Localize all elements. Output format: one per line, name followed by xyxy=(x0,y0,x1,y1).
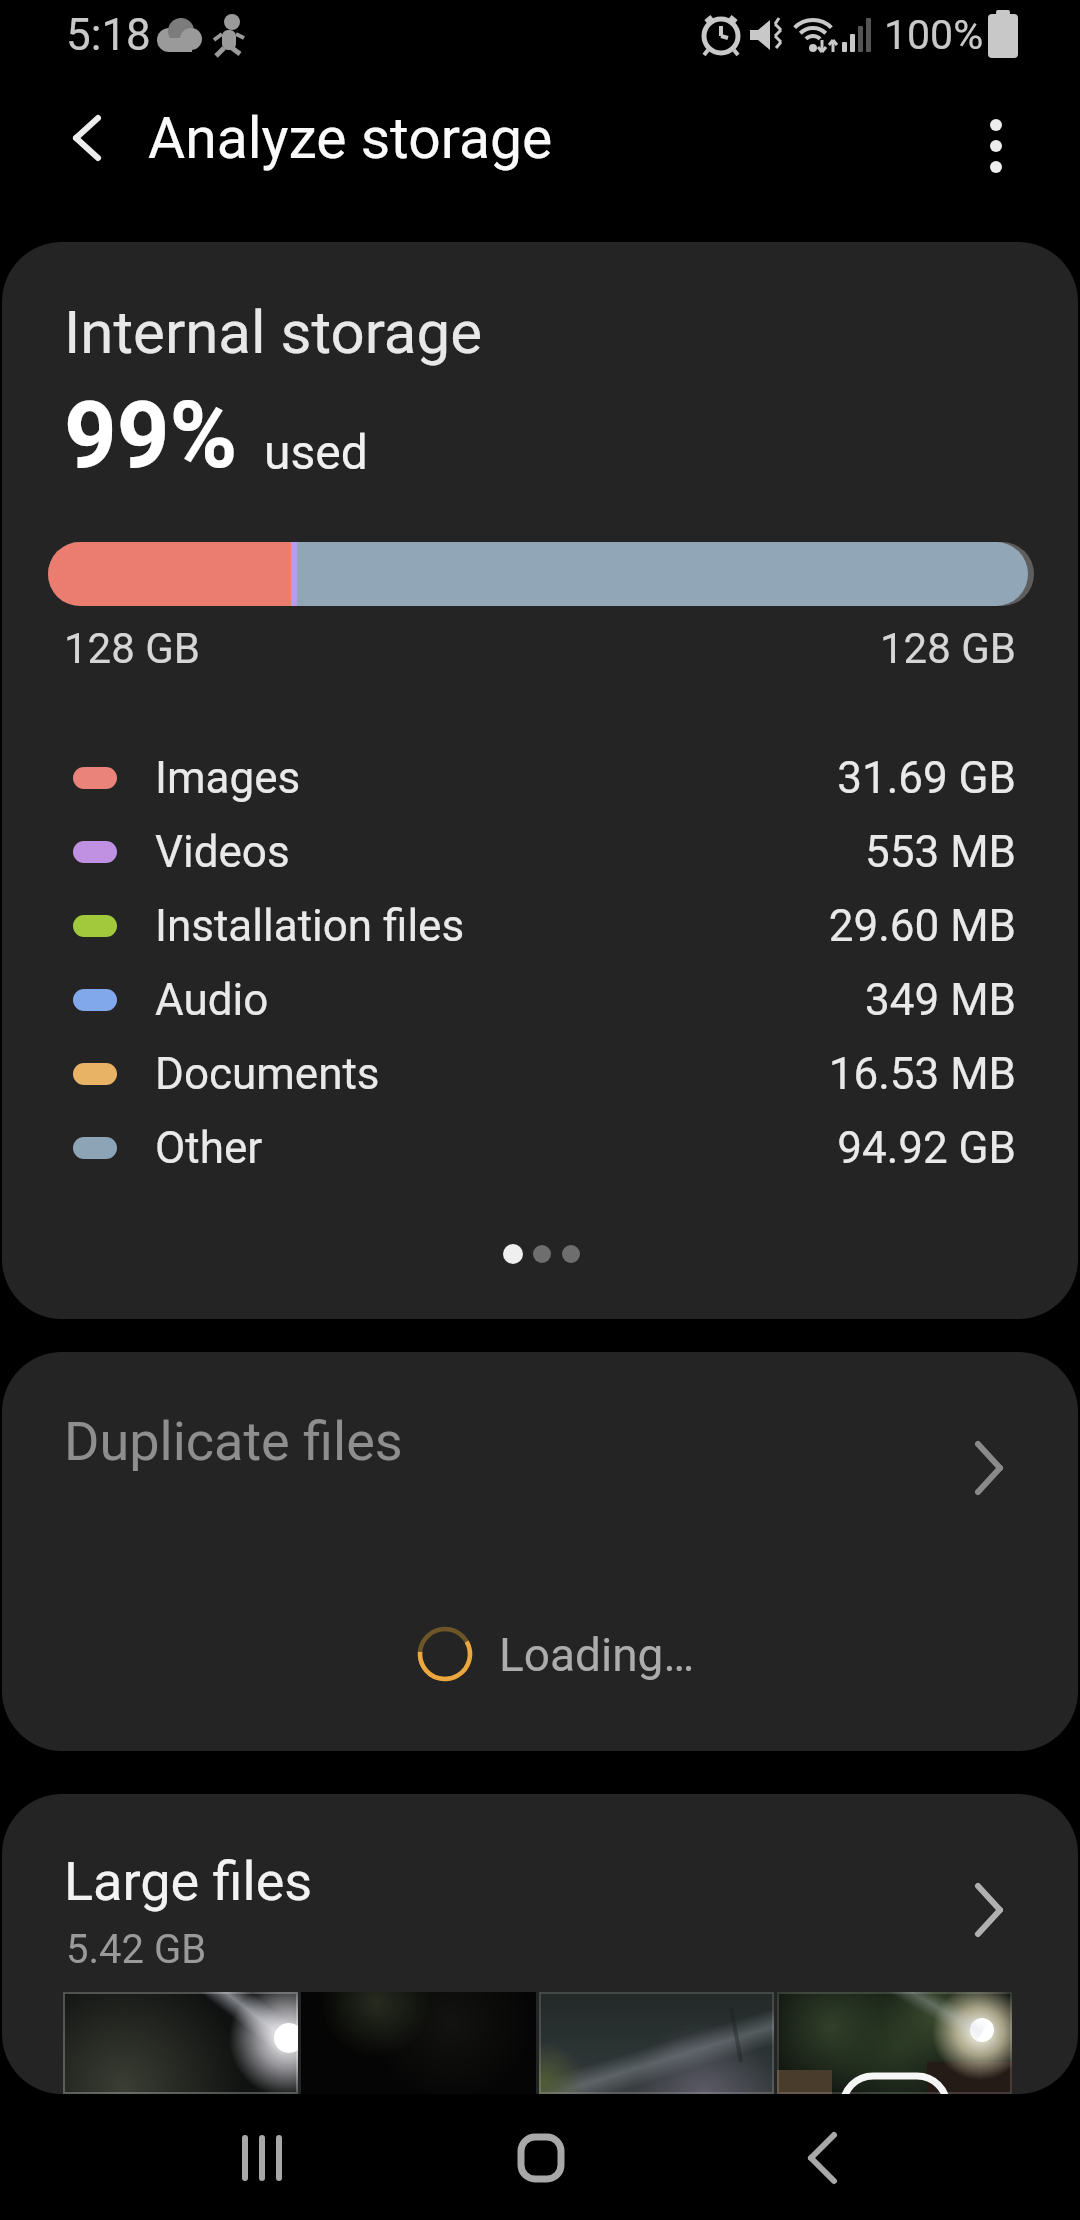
staticText: 349 MB xyxy=(2,974,1016,1026)
staticText: Audio xyxy=(155,974,269,1026)
button[interactable] xyxy=(50,100,126,176)
staticText: Installation files xyxy=(155,900,465,952)
button[interactable]: Videos xyxy=(2,815,1078,889)
staticText: 5:18 xyxy=(66,9,151,61)
button[interactable]: Installation files xyxy=(2,889,1078,963)
staticText: 16.53 MB xyxy=(2,1048,1016,1100)
staticText: Videos xyxy=(155,826,290,878)
staticText: 29.60 MB xyxy=(2,900,1016,952)
staticText: 94.92 GB xyxy=(2,1122,1016,1174)
staticText: 100% xyxy=(884,11,984,59)
button[interactable]: Images xyxy=(2,741,1078,815)
staticText: Large files xyxy=(64,1850,313,1913)
button[interactable]: Duplicate files xyxy=(2,1352,1078,1512)
button[interactable]: Other xyxy=(2,1111,1078,1185)
button[interactable] xyxy=(770,2106,874,2210)
staticText: Analyze storage xyxy=(148,105,553,172)
staticText: used xyxy=(264,424,368,480)
staticText: Internal storage xyxy=(64,297,483,367)
button[interactable]: Large files xyxy=(2,1794,1078,1994)
staticText: Documents xyxy=(155,1048,380,1100)
staticText: 128 GB xyxy=(64,624,201,673)
button[interactable]: Documents xyxy=(2,1037,1078,1111)
button[interactable]: Audio xyxy=(2,963,1078,1037)
staticText: 553 MB xyxy=(2,826,1016,878)
button[interactable] xyxy=(489,2106,593,2210)
staticText: Other xyxy=(155,1122,263,1174)
staticText: 31.69 GB xyxy=(2,752,1016,804)
staticText: Images xyxy=(155,752,301,804)
staticText: 99% xyxy=(64,382,238,490)
staticText: Loading… xyxy=(499,1628,695,1682)
staticText: 5.42 GB xyxy=(66,1926,207,1973)
staticText: Duplicate files xyxy=(64,1410,403,1473)
staticText: 128 GB xyxy=(2,624,1016,673)
button[interactable] xyxy=(210,2106,314,2210)
button[interactable] xyxy=(960,100,1032,172)
